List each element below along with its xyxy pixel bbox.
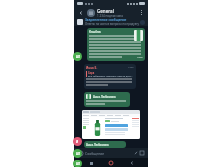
staticText: 14:02 [128,66,134,69]
button[interactable]: Анна Любимова [84,92,130,107]
staticText: Сообщение [85,151,133,156]
button[interactable] [82,110,140,139]
staticText: Анна Любимова [93,95,116,99]
staticText: АЛ [76,152,80,156]
staticText: 12:45 [137,56,143,59]
staticText: И [76,140,79,144]
staticText: АЛ [76,162,80,166]
staticText: General [97,8,114,14]
button[interactable]: More options [137,9,145,17]
button[interactable]: Attach [133,150,139,156]
button[interactable]: Кэшбэк: [87,28,145,61]
staticText: 1 234 подписчика [97,14,123,18]
staticText: Инна Б. [86,66,98,70]
staticText: Сара [88,71,95,74]
staticText: АЛ [76,55,80,59]
staticText: Анна Любимова [86,143,109,146]
staticText: Закрепленное сообщение [85,18,127,22]
button[interactable]: Инна Б. [84,64,136,89]
button[interactable]: Home [107,159,115,167]
button[interactable]: Back [128,159,136,167]
button[interactable]: Avatar АЛ [73,149,82,158]
button[interactable]: Emoji [77,150,83,156]
button[interactable]: Avatar АЛ [73,160,82,167]
button[interactable]: Закрепленное сообщение [74,18,148,26]
staticText: Все собираюсь написать просто дост... [88,74,133,77]
button[interactable]: Back [77,9,85,17]
button[interactable]: Avatar И [73,137,82,146]
button[interactable] [87,9,95,17]
button[interactable]: Stickers [139,150,145,156]
staticText: Кэшбэк: [89,30,102,34]
button[interactable]: Recents [87,159,95,167]
staticText: Ответы на частые вопросы по продукту [85,22,139,26]
button[interactable]: Анна Любимова [84,141,126,148]
button[interactable]: Avatar АЛ [73,52,82,61]
